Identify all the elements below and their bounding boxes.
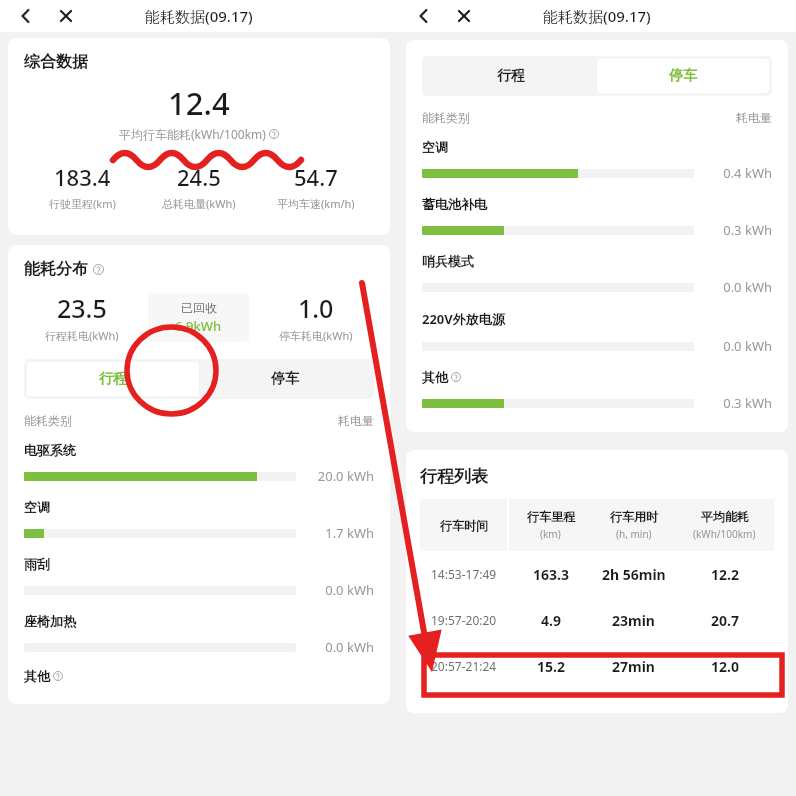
staticText: 183.4 (54, 162, 111, 192)
staticText: 能耗数据(09.17) (543, 6, 651, 26)
staticText: 14:53-17:49 (431, 566, 497, 582)
staticText: 0.0 kWh (694, 278, 772, 296)
staticText: 4.9 (541, 611, 561, 630)
staticText: 行车用时 (610, 509, 658, 524)
staticText: 20:57-21:24 (431, 658, 497, 674)
staticText: 雨刮 (24, 556, 50, 572)
button[interactable]: 停车 (199, 362, 371, 396)
button[interactable]: Back (16, 6, 36, 26)
button[interactable]: Close (57, 7, 75, 25)
staticText: 20.7 (711, 611, 739, 630)
staticText: 12.0 (711, 657, 739, 676)
staticText: 能耗分布 (24, 259, 88, 279)
staticText: 能耗类别 (422, 110, 470, 125)
staticText: 停车 (271, 370, 299, 388)
staticText: 座椅加热 (24, 613, 76, 629)
staticText: 行程 (99, 370, 127, 388)
staticText: 其他 (24, 668, 50, 684)
staticText: 23.5 (57, 291, 107, 325)
staticText: 能耗类别 (24, 413, 72, 428)
staticText: (h, min) (616, 527, 652, 541)
staticText: (kWh/100km) (693, 527, 756, 541)
staticText: 19:57-20:20 (431, 612, 497, 628)
staticText: 54.7 (294, 162, 338, 192)
staticText: 总耗电量(kWh) (162, 196, 236, 211)
staticText: 行车里程 (527, 509, 575, 524)
button[interactable]: 14:53-17:49 (420, 551, 774, 597)
staticText: 0.0 kWh (296, 638, 374, 656)
staticText: 空调 (422, 139, 448, 155)
staticText: 停车耗电(kWh) (279, 328, 353, 343)
staticText: (km) (540, 527, 561, 541)
staticText: 15.2 (537, 657, 565, 676)
staticText: 0.4 kWh (694, 164, 772, 182)
staticText: 行车时间 (440, 518, 488, 533)
button[interactable]: Back (414, 6, 434, 26)
staticText: 0.3 kWh (694, 394, 772, 412)
staticText: 0.3 kWh (694, 221, 772, 239)
staticText: 6.9kWh (175, 317, 222, 335)
staticText: 23min (612, 611, 655, 630)
staticText: 12.2 (711, 565, 739, 584)
staticText: 耗电量 (736, 110, 772, 125)
staticText: 行驶里程(km) (49, 196, 116, 211)
button[interactable]: 停车 (597, 59, 769, 93)
staticText: 220V外放电源 (422, 310, 505, 328)
button[interactable]: 行程 (425, 59, 597, 93)
button[interactable]: Close (455, 7, 473, 25)
staticText: 空调 (24, 499, 50, 515)
staticText: 蓄电池补电 (422, 196, 487, 212)
staticText: 1.7 kWh (296, 524, 374, 542)
staticText: 其他 (422, 369, 448, 385)
staticText: 电驱系统 (24, 442, 76, 458)
staticText: 综合数据 (24, 52, 88, 72)
staticText: 0.0 kWh (296, 581, 374, 599)
staticText: 平均行车能耗(kWh/100km) (119, 126, 266, 142)
staticText: 耗电量 (338, 413, 374, 428)
staticText: 已回收 (181, 300, 217, 315)
staticText: 哨兵模式 (422, 253, 474, 269)
staticText: 163.3 (533, 565, 569, 584)
staticText: 20.0 kWh (296, 467, 374, 485)
staticText: 24.5 (177, 162, 221, 192)
button[interactable]: 20:57-21:24 (420, 643, 774, 689)
staticText: 2h 56min (602, 565, 666, 584)
staticText: 停车 (669, 67, 697, 85)
staticText: 12.4 (168, 82, 230, 124)
button[interactable]: 行程 (27, 362, 199, 396)
staticText: 27min (612, 657, 655, 676)
staticText: 行程耗电(kWh) (45, 328, 119, 343)
staticText: 行程列表 (420, 466, 488, 487)
staticText: 能耗数据(09.17) (145, 6, 253, 26)
button[interactable]: 19:57-20:20 (420, 597, 774, 643)
staticText: 平均车速(km/h) (277, 196, 355, 211)
staticText: 平均能耗 (701, 509, 749, 524)
staticText: 行程 (497, 67, 525, 85)
staticText: 1.0 (298, 291, 334, 325)
staticText: 0.0 kWh (694, 337, 772, 355)
